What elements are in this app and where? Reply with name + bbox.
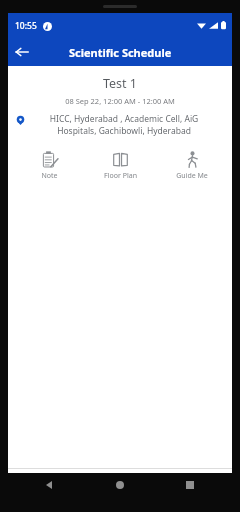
button[interactable]: Note <box>18 149 80 183</box>
button[interactable]: Guide Me <box>161 149 223 183</box>
other: Location <box>16 116 25 125</box>
button[interactable]: Enter Comments <box>31 474 207 492</box>
staticText: 08 Sep 22, 12:00 AM - 12:00 AM <box>8 96 232 106</box>
button[interactable]: Recent apps <box>180 475 200 495</box>
staticText: Enter Comments <box>38 477 106 489</box>
staticText: Note <box>41 171 58 181</box>
staticText: Guide Me <box>176 171 208 181</box>
staticText: Floor Plan <box>104 171 137 181</box>
button[interactable]: Home <box>110 475 130 495</box>
staticText: HICC, Hyderabad , Academic Cell, AiG Hos… <box>32 113 216 137</box>
staticText: Test 1 <box>8 75 232 92</box>
staticText: Scientific Schedule <box>69 45 172 60</box>
staticText: 10:55 <box>15 20 37 32</box>
button[interactable]: Back <box>40 475 60 495</box>
button[interactable]: Back <box>8 38 36 66</box>
button[interactable]: Floor Plan <box>89 149 151 183</box>
